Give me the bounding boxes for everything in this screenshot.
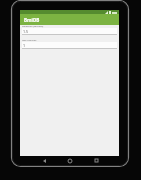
staticText: Max Watches [22, 39, 37, 42]
staticText: Timezone (seconds) [22, 25, 44, 28]
button[interactable] [38, 156, 50, 165]
staticText: 1.5 [23, 29, 29, 34]
button[interactable] [90, 156, 102, 165]
button[interactable]: 1 [22, 42, 117, 49]
staticText: BmiDB [24, 17, 40, 23]
button[interactable] [64, 156, 76, 165]
button[interactable]: 1.5 [22, 28, 117, 35]
staticText: 1 [23, 43, 26, 48]
button[interactable]: BmiDB [20, 14, 119, 25]
